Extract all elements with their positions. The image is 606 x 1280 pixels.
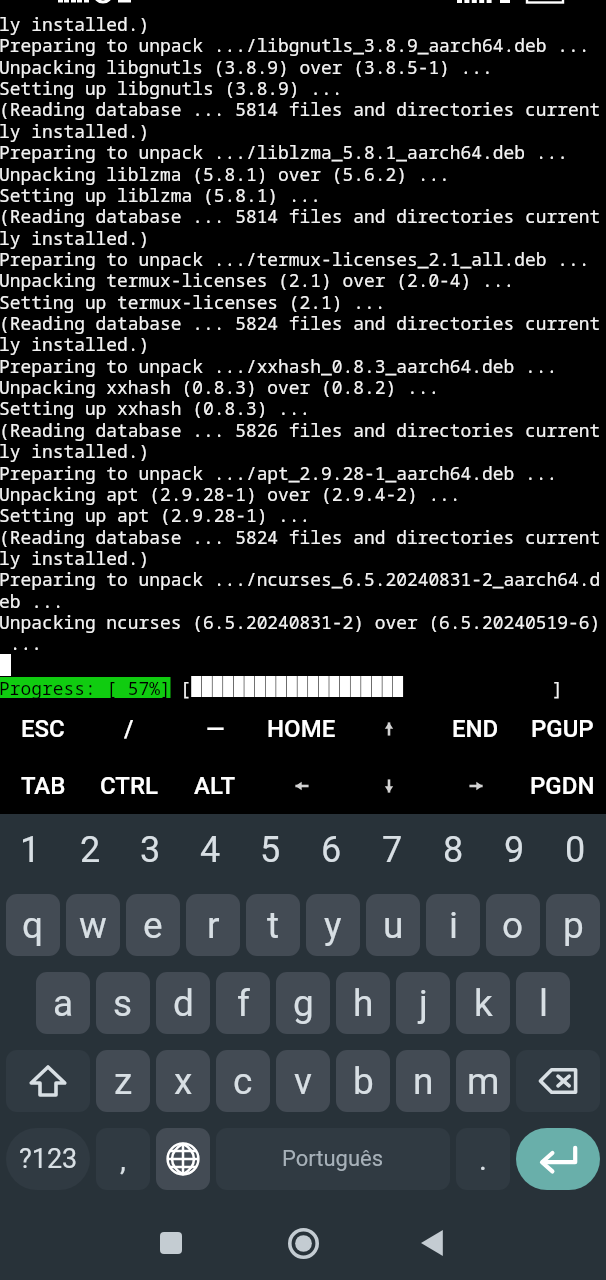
button[interactable]: h: [336, 972, 390, 1034]
button[interactable]: 0: [545, 814, 606, 886]
staticText: 1: [20, 829, 41, 871]
button[interactable]: s: [96, 972, 150, 1034]
staticText: ...: [0, 631, 42, 655]
button[interactable]: j: [396, 972, 450, 1034]
staticText: ESC: [21, 715, 65, 743]
button[interactable]: ?123: [6, 1128, 90, 1190]
button[interactable]: Português: [216, 1128, 450, 1190]
button[interactable]: r: [186, 894, 240, 956]
button[interactable]: 5: [240, 814, 301, 886]
staticText: m: [467, 1060, 500, 1103]
staticText: g: [293, 982, 314, 1025]
button[interactable]: Change keyboard language: [156, 1128, 210, 1190]
button[interactable]: z: [96, 1050, 150, 1112]
button[interactable]: Arrow left: [258, 758, 345, 813]
button[interactable]: 9: [484, 814, 545, 886]
staticText: r: [207, 904, 220, 947]
button[interactable]: END: [432, 701, 519, 756]
staticText: (Reading database ... 5824 files and dir…: [0, 525, 601, 549]
button[interactable]: TAB: [0, 758, 86, 813]
button[interactable]: k: [456, 972, 510, 1034]
staticText: z: [114, 1060, 133, 1103]
staticText: b: [353, 1060, 374, 1103]
button[interactable]: Home: [273, 1206, 333, 1280]
staticText: (Reading database ... 5814 files and dir…: [0, 97, 601, 121]
button[interactable]: v: [276, 1050, 330, 1112]
staticText: ?123: [19, 1143, 78, 1175]
button[interactable]: .: [456, 1128, 510, 1190]
staticText: w: [79, 904, 107, 947]
button[interactable]: y: [306, 894, 360, 956]
staticText: eb ...: [0, 589, 64, 613]
button[interactable]: w: [66, 894, 120, 956]
button[interactable]: o: [486, 894, 540, 956]
staticText: Setting up termux-licenses (2.1) ...: [0, 290, 386, 314]
staticText: (Reading database ... 5824 files and dir…: [0, 311, 601, 335]
staticText: c: [233, 1060, 253, 1103]
button[interactable]: Recent apps: [141, 1206, 201, 1280]
staticText: Unpacking apt (2.9.28-1) over (2.9.4-2) …: [0, 482, 461, 506]
button[interactable]: Backspace: [516, 1050, 600, 1112]
button[interactable]: Arrow right: [432, 758, 519, 813]
button[interactable]: a: [36, 972, 90, 1034]
staticText: ALT: [194, 772, 236, 800]
button[interactable]: 3: [120, 814, 180, 886]
staticText: ly installed.): [0, 332, 150, 356]
button[interactable]: Arrow up: [345, 701, 432, 756]
staticText: p: [563, 904, 584, 947]
button[interactable]: 8: [423, 814, 484, 886]
button[interactable]: 6: [301, 814, 362, 886]
button[interactable]: l: [516, 972, 570, 1034]
staticText: PGDN: [530, 772, 595, 800]
staticText: Unpacking xxhash (0.8.3) over (0.8.2) ..…: [0, 375, 440, 399]
button[interactable]: x: [156, 1050, 210, 1112]
button[interactable]: —: [172, 701, 258, 756]
staticText: Preparing to unpack .../ncurses_6.5.2024…: [0, 567, 601, 591]
staticText: [: [180, 676, 191, 700]
staticText: q: [22, 904, 44, 947]
staticText: 9: [504, 829, 525, 871]
staticText: e: [143, 904, 163, 947]
button[interactable]: ,: [96, 1128, 150, 1190]
button[interactable]: 4: [180, 814, 240, 886]
button[interactable]: 2: [60, 814, 120, 886]
button[interactable]: Arrow down: [345, 758, 432, 813]
button[interactable]: m: [456, 1050, 510, 1112]
button[interactable]: HOME: [258, 701, 345, 756]
button[interactable]: ESC: [0, 701, 86, 756]
button[interactable]: t: [246, 894, 300, 956]
button[interactable]: n: [396, 1050, 450, 1112]
button[interactable]: /: [86, 701, 172, 756]
button[interactable]: b: [336, 1050, 390, 1112]
button[interactable]: i: [426, 894, 480, 956]
staticText: .: [479, 1142, 487, 1177]
button[interactable]: ALT: [172, 758, 258, 813]
button[interactable]: g: [276, 972, 330, 1034]
button[interactable]: d: [156, 972, 210, 1034]
staticText: o: [502, 904, 524, 947]
staticText: PGUP: [531, 715, 594, 743]
button[interactable]: 7: [362, 814, 423, 886]
staticText: 8: [443, 829, 464, 871]
button[interactable]: Back: [404, 1206, 464, 1280]
button[interactable]: p: [546, 894, 600, 956]
button[interactable]: CTRL: [86, 758, 172, 813]
button[interactable]: PGUP: [519, 701, 606, 756]
staticText: 2: [80, 829, 101, 871]
button[interactable]: f: [216, 972, 270, 1034]
staticText: ly installed.): [0, 546, 150, 570]
button[interactable]: c: [216, 1050, 270, 1112]
button[interactable]: PGDN: [519, 758, 606, 813]
staticText: (Reading database ... 5814 files and dir…: [0, 204, 601, 228]
button[interactable]: Shift: [6, 1050, 90, 1112]
button[interactable]: 1: [0, 814, 60, 886]
staticText: Setting up apt (2.9.28-1) ...: [0, 503, 311, 527]
button[interactable]: u: [366, 894, 420, 956]
button[interactable]: Enter: [516, 1128, 600, 1190]
button[interactable]: q: [6, 894, 60, 956]
staticText: /: [124, 715, 134, 743]
staticText: 6: [321, 829, 342, 871]
staticText: CTRL: [100, 772, 158, 800]
button[interactable]: e: [126, 894, 180, 956]
staticText: Unpacking libgnutls (3.8.9) over (3.8.5-…: [0, 55, 493, 79]
